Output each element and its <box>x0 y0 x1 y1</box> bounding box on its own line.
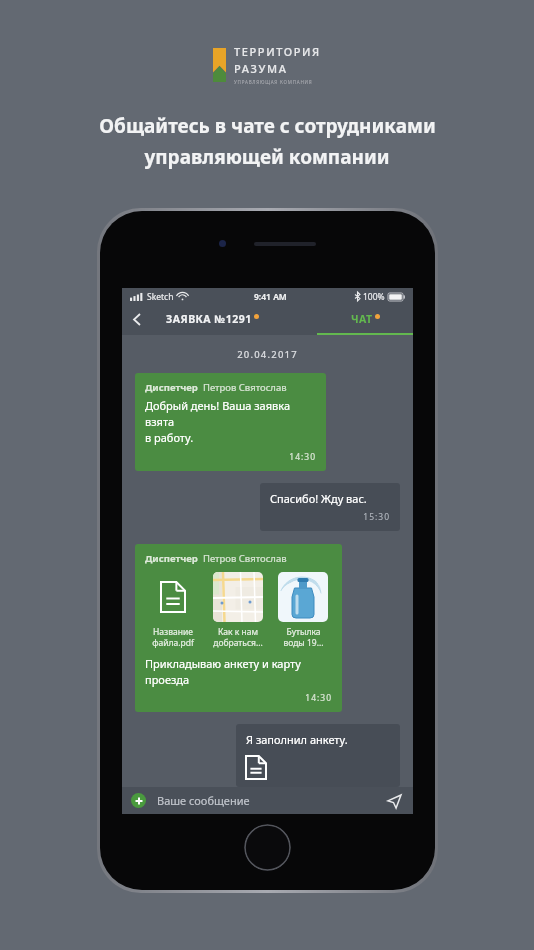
button[interactable]: Ваше сообщение <box>157 787 384 814</box>
staticText: Прикладываю анкету и карту проезда <box>145 656 301 687</box>
staticText: 14:30 <box>145 451 316 463</box>
staticText: ЗАЯВКА №1291 <box>166 312 252 326</box>
staticText: Диспетчер <box>145 552 198 565</box>
staticText: Петров Святослав <box>203 381 287 394</box>
staticText: 100% <box>363 291 385 303</box>
staticText: 15:30 <box>270 511 390 523</box>
staticText: Диспетчер <box>145 381 198 394</box>
staticText: Как к нам добраться... <box>213 626 263 648</box>
button[interactable]: Я заполнил анкету. <box>236 724 400 787</box>
button[interactable]: Диспетчер <box>135 544 342 712</box>
staticText: Название файла.pdf <box>152 626 194 648</box>
staticText: РАЗУМА <box>234 61 288 76</box>
staticText: ТЕРРИТОРИЯ <box>234 44 321 59</box>
staticText: Общайтесь в чате с сотрудниками <box>99 113 436 139</box>
button[interactable]: Бутылка воды 19... <box>275 572 331 648</box>
button[interactable]: Back <box>122 305 152 333</box>
staticText: Спасибо! Жду вас. <box>270 491 367 506</box>
staticText: ЧАТ <box>351 312 373 326</box>
staticText: Бутылка воды 19... <box>283 626 324 648</box>
staticText: Я заполнил анкету. <box>246 732 348 747</box>
staticText: 9:41 AM <box>254 291 287 303</box>
staticText: Sketch <box>147 291 174 303</box>
button[interactable]: Название файла.pdf <box>145 572 201 648</box>
staticText: Добрый день! Ваша заявка взята в работу. <box>145 398 316 445</box>
button[interactable]: Спасибо! Жду вас. <box>260 483 400 531</box>
button[interactable]: ЗАЯВКА №1291 <box>152 305 317 333</box>
staticText: УПРАВЛЯЮЩАЯ КОМПАНИЯ <box>234 79 313 85</box>
staticText: 20.04.2017 <box>135 348 400 361</box>
button[interactable]: Диспетчер <box>135 373 326 471</box>
button[interactable]: Add attachment <box>131 793 146 808</box>
staticText: Петров Святослав <box>203 552 287 565</box>
staticText: 14:30 <box>145 692 332 704</box>
staticText: управляющей компании <box>144 144 390 170</box>
button[interactable]: Send <box>384 791 404 811</box>
button[interactable]: ЧАТ <box>317 305 413 333</box>
button[interactable]: Как к нам добраться... <box>210 572 266 648</box>
staticText: Ваше сообщение <box>157 793 250 808</box>
